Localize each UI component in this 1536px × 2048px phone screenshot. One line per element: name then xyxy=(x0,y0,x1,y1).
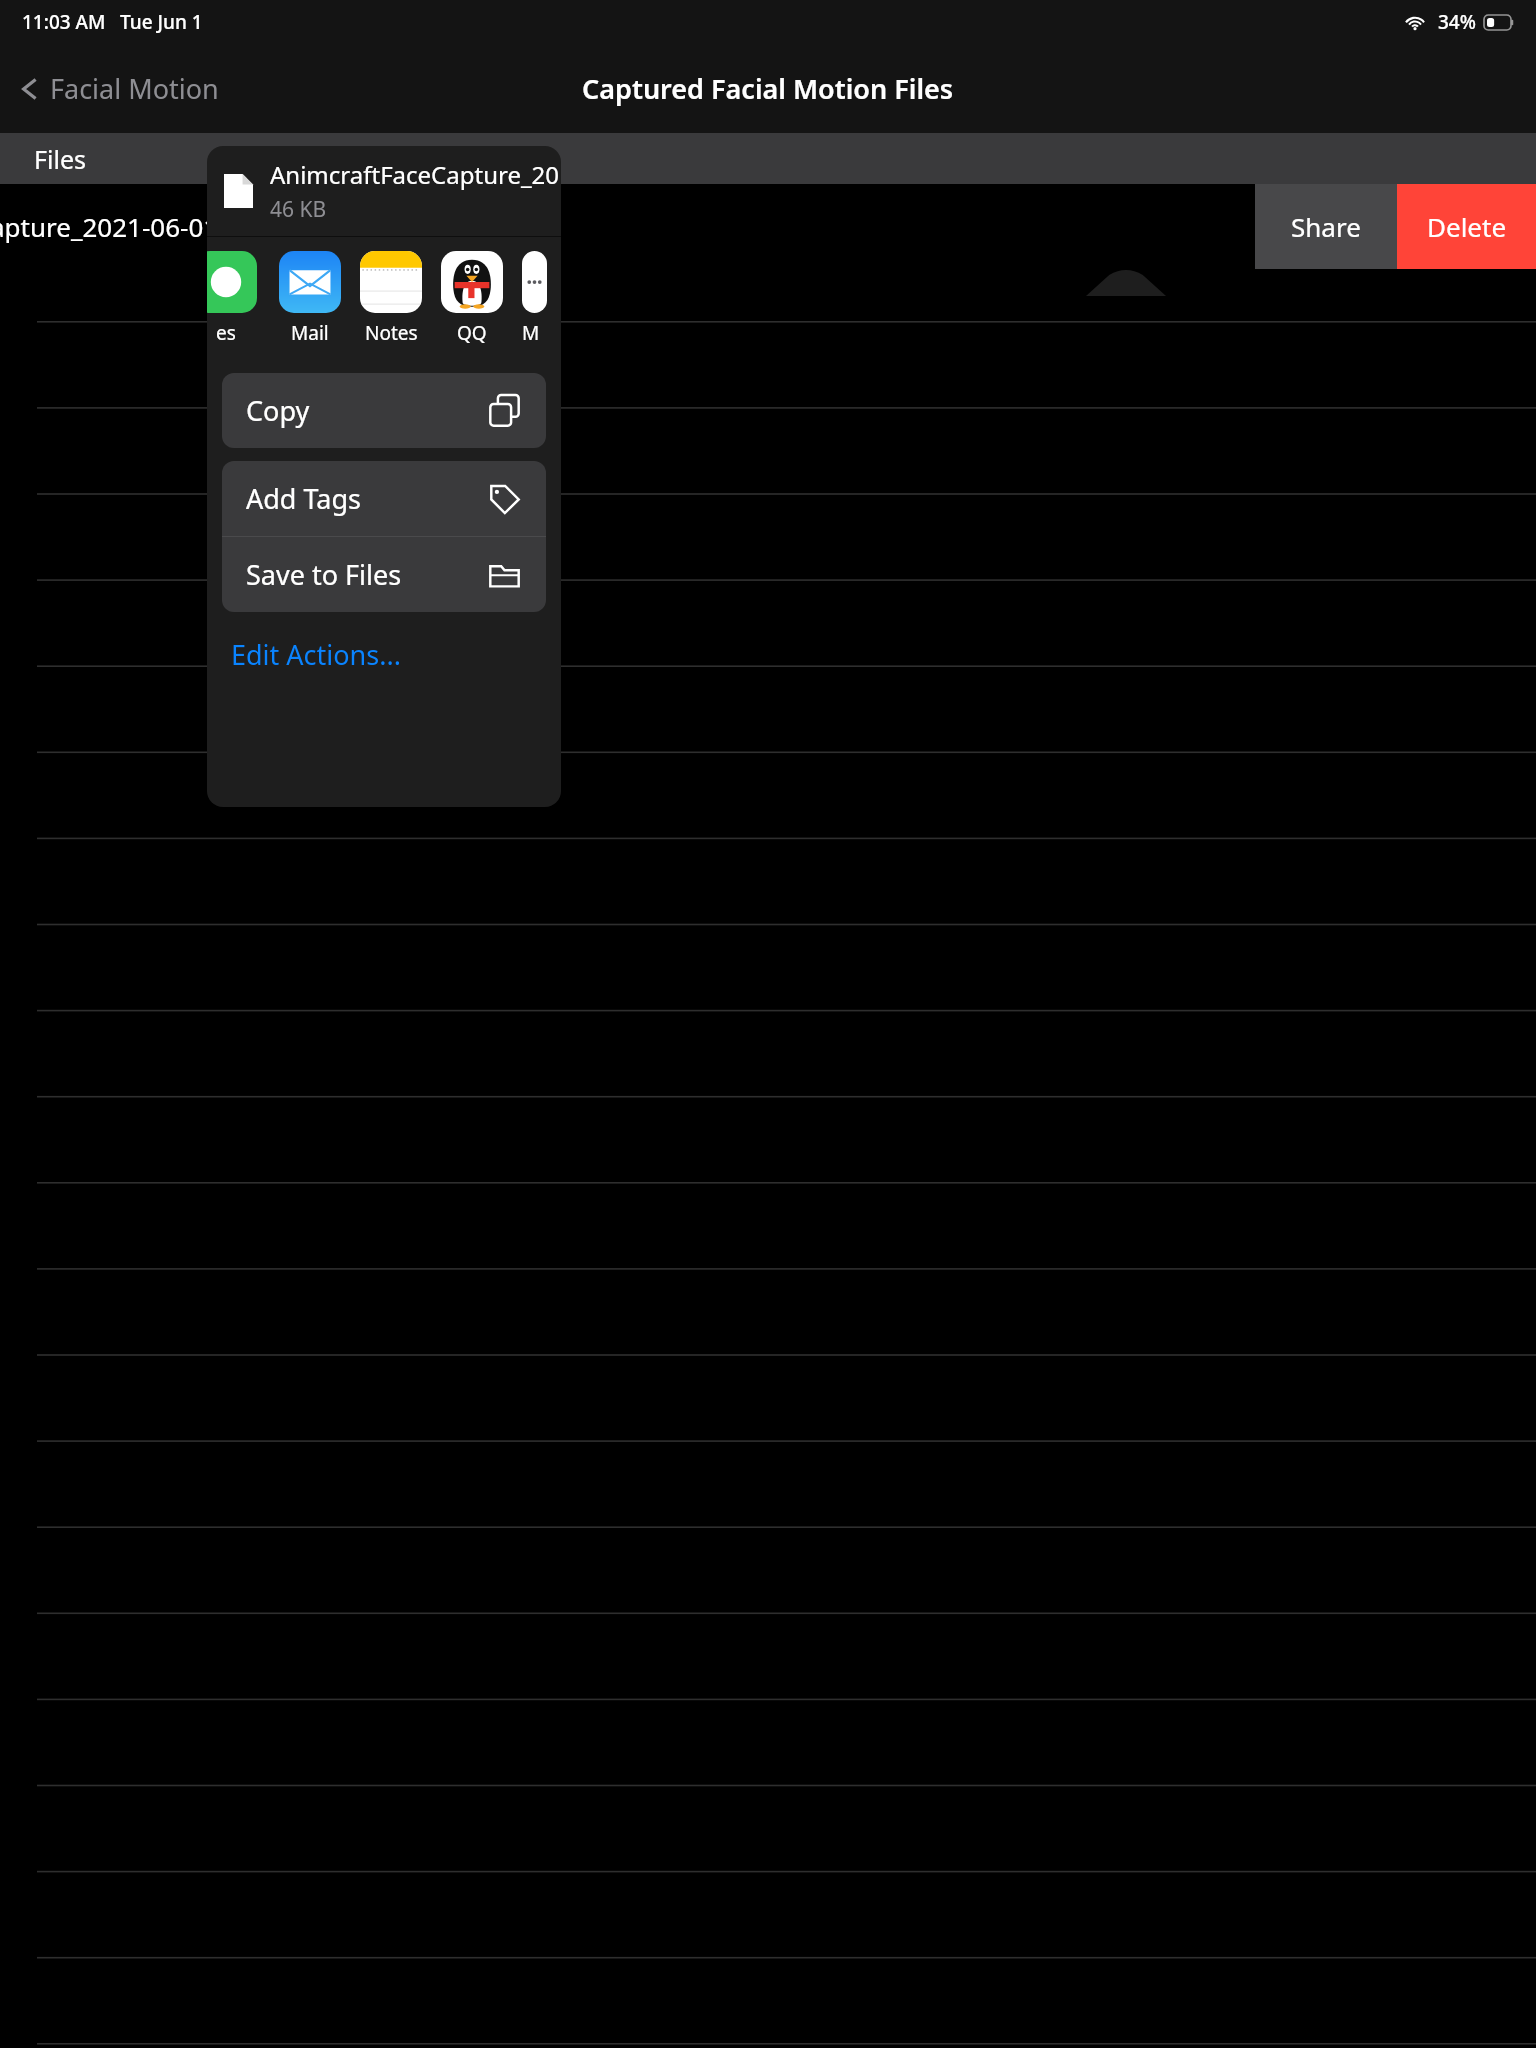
staticText: Files xyxy=(34,142,86,176)
staticText: 34% xyxy=(1438,9,1476,35)
staticText: Save to Files xyxy=(246,556,402,593)
staticText: Add Tags xyxy=(246,480,362,517)
staticText: es xyxy=(216,320,236,346)
button[interactable]: Save to Files xyxy=(222,537,546,612)
staticText: Delete xyxy=(1427,209,1507,244)
staticText: Share xyxy=(1291,209,1361,244)
button[interactable]: Edit Actions... xyxy=(207,628,561,687)
staticText: Notes xyxy=(365,320,418,346)
staticText: AnimcraftFaceCapture_2021-06-01_10/... xyxy=(270,158,561,191)
button[interactable]: Mail xyxy=(279,251,341,346)
button[interactable]: Delete xyxy=(1397,184,1536,269)
staticText: apture_2021-06-01_10:56:11.aceraw xyxy=(0,209,427,244)
staticText: More xyxy=(522,320,547,346)
button[interactable]: Facial Motion xyxy=(0,62,235,115)
button[interactable]: Notes xyxy=(360,251,422,346)
staticText: Edit Actions... xyxy=(231,636,401,673)
button[interactable]: Copy xyxy=(222,373,546,448)
button[interactable]: AnimcraftFaceCapture_2021-06-01_10/... xyxy=(207,146,561,236)
staticText: 11:03 AM xyxy=(22,9,106,35)
button[interactable]: Messages xyxy=(207,251,257,346)
staticText: Facial Motion xyxy=(50,70,219,107)
button[interactable]: More xyxy=(522,251,547,346)
staticText: QQ xyxy=(457,320,487,346)
staticText: 46 KB xyxy=(270,195,327,224)
staticText: Tue Jun 1 xyxy=(120,9,203,35)
button[interactable]: Share xyxy=(1255,184,1397,269)
button[interactable]: QQ xyxy=(441,251,503,346)
button[interactable]: Add Tags xyxy=(222,461,546,536)
staticText: Copy xyxy=(246,392,310,429)
staticText: Captured Facial Motion Files xyxy=(582,70,954,107)
staticText: Mail xyxy=(291,320,329,346)
